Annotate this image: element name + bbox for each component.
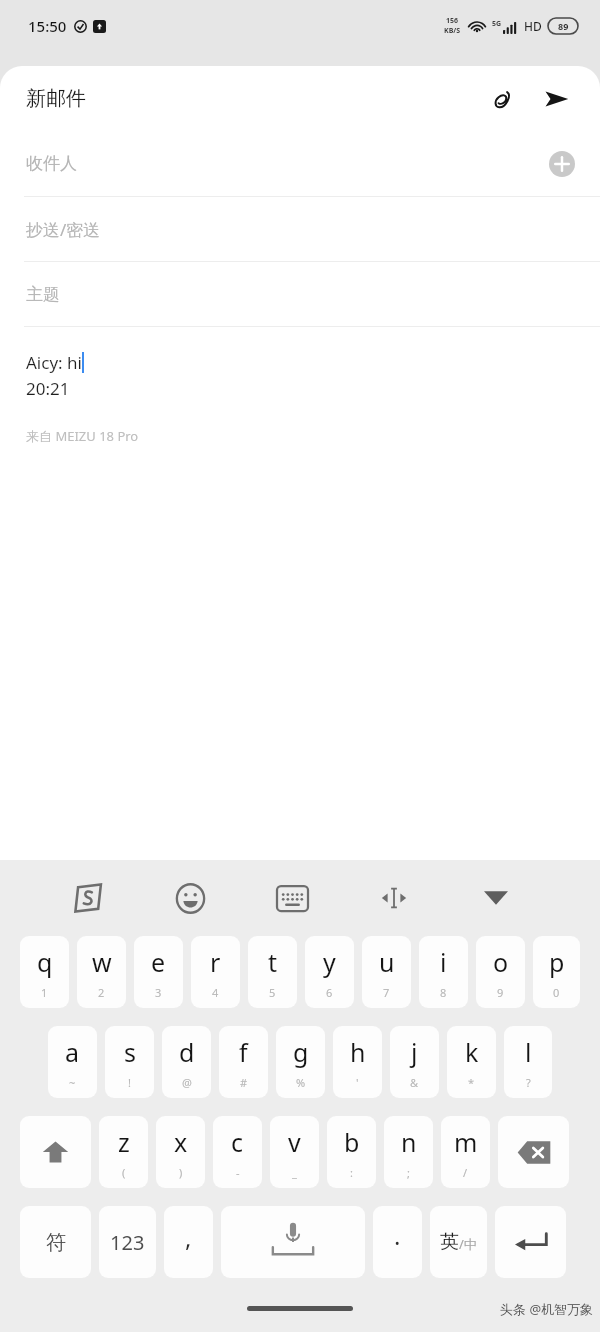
button[interactable]: Sogou input settings [62,872,114,924]
button[interactable]: w [77,936,126,1008]
staticText: HD [524,18,542,34]
staticText: 15:50 [28,16,67,36]
staticText: n [401,1125,417,1159]
staticText: ~ [69,1075,76,1090]
button[interactable]: u [362,936,411,1008]
button[interactable]: e [134,936,183,1008]
button[interactable]: Emoji [164,872,216,924]
staticText: q [37,945,53,979]
staticText: 5 [269,985,276,1000]
button[interactable]: s [105,1026,154,1098]
staticText: ' [356,1075,359,1090]
staticText: : [350,1165,353,1180]
button[interactable]: Period [373,1206,422,1278]
staticText: 3 [155,985,162,1000]
button[interactable]: 收件人 [0,131,600,196]
staticText: ( [122,1165,126,1180]
button[interactable]: Backspace [498,1116,569,1188]
staticText: r [210,945,221,979]
button[interactable]: Add recipient [542,144,582,184]
button[interactable]: d [162,1026,211,1098]
button[interactable]: Numbers [99,1206,156,1278]
button[interactable]: b [327,1116,376,1188]
staticText: l [525,1035,532,1069]
staticText: /中 [459,1235,477,1253]
staticText: v [288,1125,301,1159]
staticText: o [493,945,509,979]
staticText: 4 [212,985,219,1000]
button[interactable]: f [219,1026,268,1098]
button[interactable]: Hide keyboard [470,872,522,924]
button[interactable]: q [20,936,69,1008]
button[interactable]: j [390,1026,439,1098]
staticText: f [239,1035,248,1069]
staticText: ) [179,1165,183,1180]
button[interactable]: i [419,936,468,1008]
staticText: t [268,945,278,979]
button[interactable]: k [447,1026,496,1098]
button[interactable]: Space [221,1206,365,1278]
button[interactable]: Move cursor [368,872,420,924]
button[interactable]: Symbols [20,1206,91,1278]
staticText: , [185,1221,192,1254]
staticText: a [65,1035,80,1069]
staticText: m [454,1125,478,1159]
button[interactable]: m [441,1116,490,1188]
button[interactable]: l [504,1026,552,1098]
staticText: & [410,1075,419,1090]
staticText: i [440,945,447,979]
button[interactable]: p [533,936,580,1008]
button[interactable]: c [213,1116,262,1188]
staticText: · [394,1226,401,1259]
staticText: 2 [98,985,105,1000]
staticText: 7 [383,985,390,1000]
button[interactable]: o [476,936,525,1008]
staticText: 123 [110,1229,145,1256]
button[interactable]: 抄送/密送 [0,197,600,261]
button[interactable]: y [305,936,354,1008]
staticText: 9 [497,985,504,1000]
button[interactable]: x [156,1116,205,1188]
button[interactable]: Switch language [430,1206,487,1278]
button[interactable]: h [333,1026,382,1098]
button[interactable]: g [276,1026,325,1098]
staticText: x [174,1125,188,1159]
button[interactable]: Comma [164,1206,213,1278]
staticText: 头条 @机智万象 [500,1300,594,1318]
button[interactable]: Shift [20,1116,91,1188]
button[interactable]: t [248,936,297,1008]
staticText: * [468,1075,475,1090]
button[interactable]: Keyboard layout [266,872,318,924]
staticText: 0 [553,985,560,1000]
button[interactable]: r [191,936,240,1008]
button[interactable]: v [270,1116,319,1188]
staticText: 抄送/密送 [26,218,101,241]
staticText: 156 [446,16,459,26]
button[interactable]: 主题 [0,262,600,326]
staticText: s [124,1035,136,1069]
staticText: # [240,1075,248,1090]
staticText: ? [526,1075,531,1090]
staticText: c [231,1125,244,1159]
staticText: w [92,945,112,979]
staticText: h [350,1035,366,1069]
staticText: @ [182,1075,192,1090]
staticText: j [411,1035,418,1069]
staticText: KB/S [444,26,461,36]
staticText: 来自 MEIZU 18 Pro [26,427,139,445]
button[interactable]: Aicy: hi [0,327,600,860]
staticText: ! [128,1075,131,1090]
staticText: e [151,945,166,979]
button[interactable]: Enter [495,1206,566,1278]
button[interactable]: Send [534,77,578,121]
button[interactable]: z [99,1116,148,1188]
staticText: 英 [440,1230,459,1254]
staticText: 5G [492,19,502,29]
staticText: - [236,1165,240,1180]
staticText: 6 [326,985,333,1000]
button[interactable]: Attach file [480,77,524,121]
staticText: 收件人 [26,153,77,174]
button[interactable]: n [384,1116,433,1188]
button[interactable]: a [48,1026,97,1098]
staticText: d [179,1035,195,1069]
